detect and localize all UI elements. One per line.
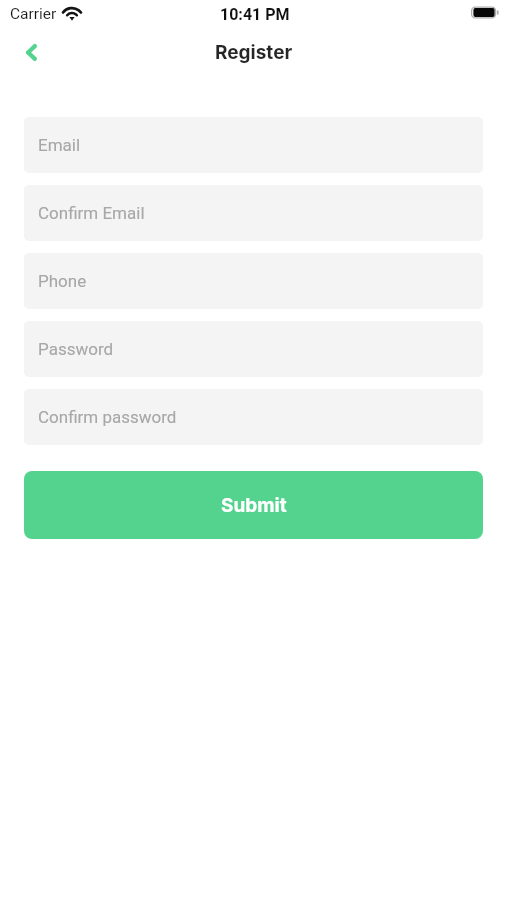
staticText: Phone [38,271,87,291]
button[interactable]: Email [24,117,483,173]
staticText: Password [38,339,114,359]
button[interactable]: Back [9,30,53,74]
button[interactable]: Submit [24,471,483,539]
staticText: Email [38,135,81,155]
staticText: Submit [221,494,287,517]
staticText: Register [215,41,293,64]
staticText: Confirm password [38,407,177,427]
button[interactable]: Password [24,321,483,377]
button[interactable]: Confirm Email [24,185,483,241]
staticText: 10:41 PM [220,5,290,24]
staticText: Carrier [10,5,57,23]
button[interactable]: Confirm password [24,389,483,445]
staticText: Confirm Email [38,203,145,223]
button[interactable]: Phone [24,253,483,309]
